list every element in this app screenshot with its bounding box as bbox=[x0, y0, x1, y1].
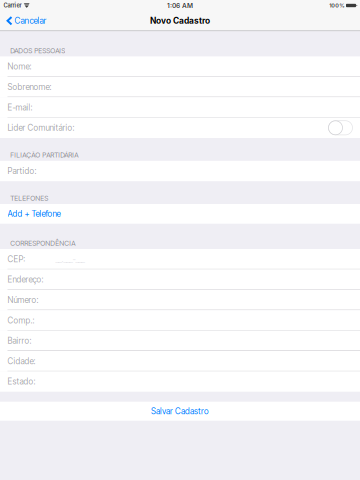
button[interactable]: Salvar Cadastro bbox=[0, 402, 360, 421]
staticText: Salvar Cadastro bbox=[151, 406, 209, 416]
staticText: Sobrenome: bbox=[7, 82, 51, 92]
staticText: __.___-___ bbox=[55, 254, 84, 264]
staticText: DADOS PESSOAIS bbox=[10, 46, 65, 55]
staticText: 1:06 AM bbox=[167, 1, 193, 9]
button[interactable]: Líder Comunitário bbox=[328, 121, 352, 135]
staticText: Carrier bbox=[3, 2, 21, 9]
staticText: Estado: bbox=[7, 377, 35, 387]
staticText: Partido: bbox=[7, 166, 36, 176]
staticText: FILIAÇÃO PARTIDÁRIA bbox=[10, 151, 78, 159]
staticText: Endereço: bbox=[7, 275, 43, 285]
staticText: Novo Cadastro bbox=[150, 16, 210, 26]
button[interactable]: Add + Telefone bbox=[0, 204, 360, 224]
staticText: Add + Telefone bbox=[7, 209, 60, 219]
staticText: Cidade: bbox=[7, 356, 35, 366]
staticText: Bairro: bbox=[7, 336, 31, 346]
staticText: 100% bbox=[329, 2, 344, 9]
staticText: CORRESPONDÊNCIA bbox=[10, 239, 75, 247]
staticText: E-mail: bbox=[7, 102, 32, 112]
staticText: TELEFONES bbox=[10, 194, 48, 202]
staticText: Cancelar bbox=[15, 16, 47, 26]
staticText: Lider Comunitário: bbox=[7, 123, 74, 133]
staticText: CEP: bbox=[7, 254, 25, 264]
staticText: Nome: bbox=[7, 62, 31, 72]
staticText: Comp.: bbox=[7, 315, 34, 325]
button[interactable]: Cancelar bbox=[0, 11, 53, 30]
staticText: Número: bbox=[7, 295, 38, 305]
